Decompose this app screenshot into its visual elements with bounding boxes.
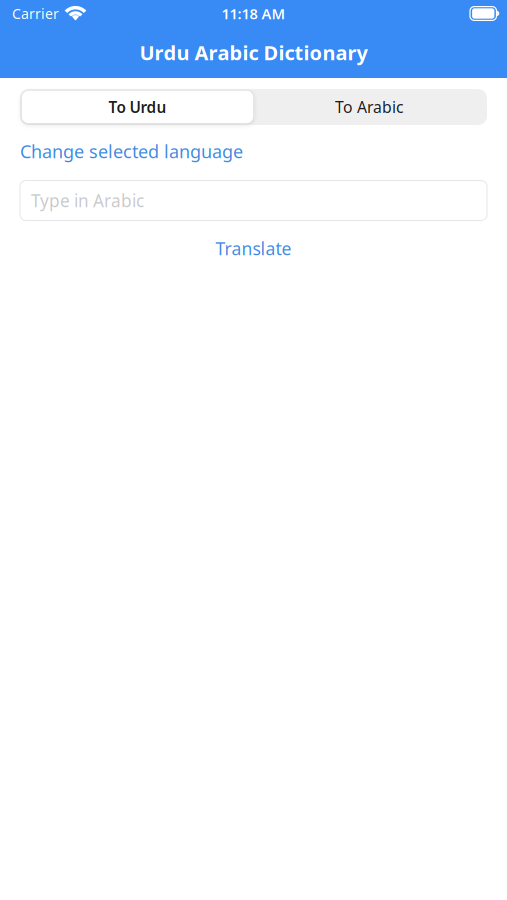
button[interactable]: Change selected language <box>20 139 243 163</box>
staticText: Translate <box>215 236 291 260</box>
staticText: Change selected language <box>20 139 243 163</box>
staticText: Urdu Arabic Dictionary <box>139 39 367 66</box>
staticText: Type in Arabic <box>31 189 144 212</box>
staticText: To Arabic <box>335 96 404 118</box>
staticText: Carrier <box>12 4 59 23</box>
button[interactable]: Type in Arabic <box>20 180 487 220</box>
button[interactable]: Translate <box>20 236 487 260</box>
staticText: To Urdu <box>108 97 166 117</box>
button[interactable]: To Urdu <box>21 90 253 123</box>
staticText: 11:18 AM <box>221 3 285 23</box>
button[interactable]: To Arabic <box>253 90 485 123</box>
